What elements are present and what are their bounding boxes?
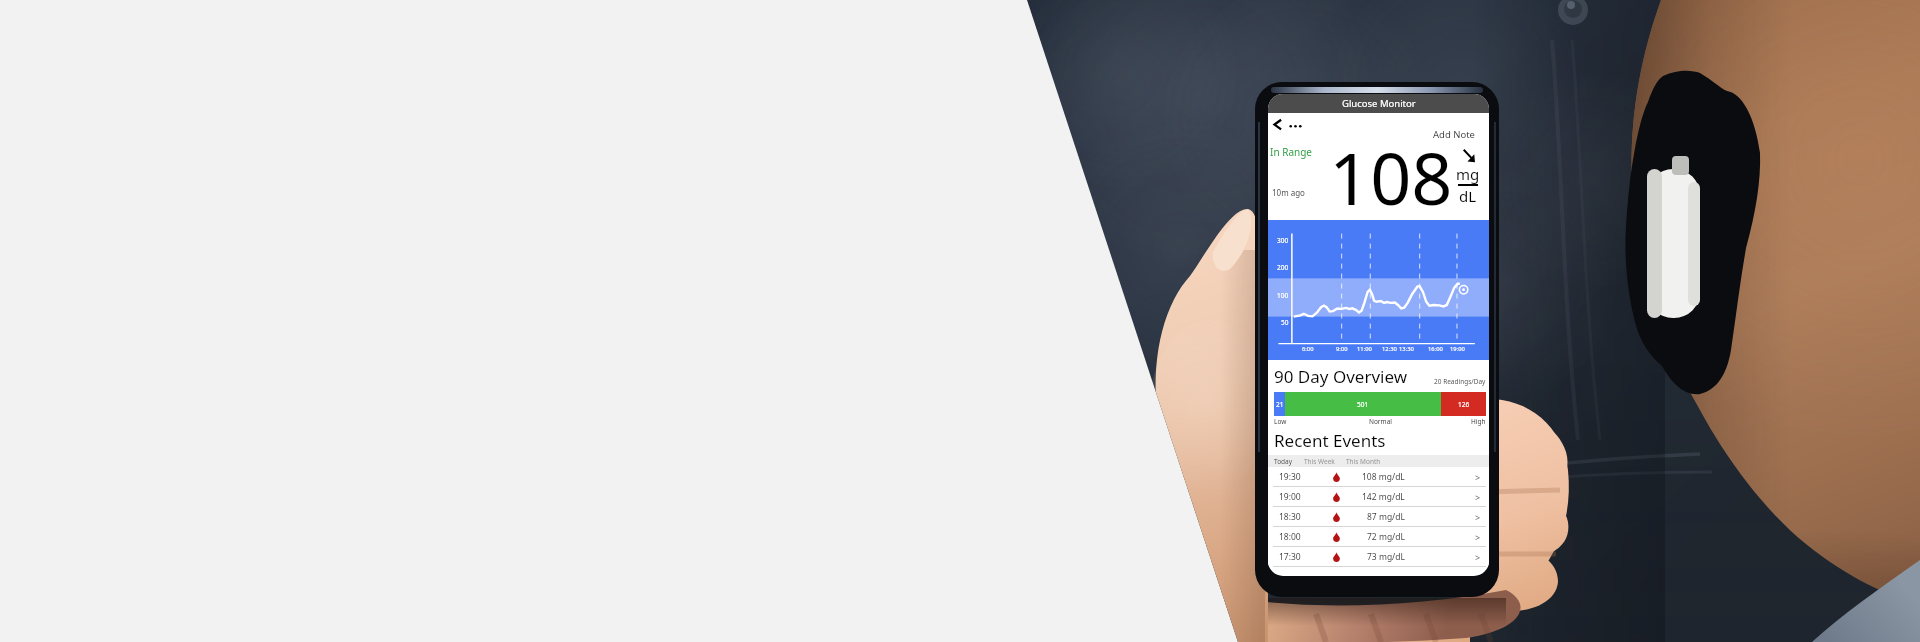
button[interactable]: More options [1288,119,1303,132]
staticText: 108 mg/dL [1362,471,1405,483]
staticText: 20 Readings/Day [1434,377,1486,386]
staticText: 142 mg/dL [1362,491,1405,503]
staticText: 21 [1276,400,1284,409]
staticText: In Range [1270,145,1312,159]
staticText: Low [1274,417,1287,426]
staticText: 72 mg/dL [1367,531,1405,543]
staticText: 11:00 [1357,345,1372,353]
staticText: 19:30 [1279,471,1301,483]
staticText: 10m ago [1272,187,1305,198]
staticText: > [1475,491,1481,503]
staticText: 18:30 [1279,511,1301,523]
button[interactable]: 19:30 [1268,467,1489,487]
staticText: 501 [1357,400,1369,409]
staticText: Glucose Monitor [1342,97,1416,110]
staticText: 300 [1277,236,1289,245]
staticText: This Month [1346,457,1381,466]
staticText: mg [1456,164,1480,184]
button[interactable]: 18:00 [1268,527,1489,547]
staticText: 13:30 [1399,345,1414,353]
staticText: 17:30 [1279,551,1301,563]
staticText: 108 [1329,128,1453,209]
staticText: 100 [1277,291,1289,300]
staticText: Normal [1369,417,1392,426]
staticText: Today [1274,457,1293,466]
button[interactable]: Today [1274,457,1293,466]
staticText: > [1475,471,1481,483]
staticText: 18:00 [1279,531,1301,543]
staticText: 87 mg/dL [1367,511,1405,523]
staticText: Add Note [1433,128,1475,141]
button[interactable]: Back [1270,117,1285,131]
staticText: 9:00 [1336,345,1348,353]
staticText: 19:00 [1279,491,1301,503]
staticText: Recent Events [1274,429,1386,452]
staticText: 90 Day Overview [1274,365,1408,388]
staticText: > [1475,511,1481,523]
button[interactable]: 19:00 [1268,487,1489,507]
staticText: 73 mg/dL [1367,551,1405,563]
staticText: 16:00 [1428,345,1443,353]
button[interactable]: 18:30 [1268,507,1489,527]
staticText: High [1471,417,1486,426]
staticText: 126 [1458,400,1470,409]
button[interactable]: This Month [1346,457,1381,466]
staticText: 6:00 [1302,345,1314,353]
staticText: > [1475,551,1481,563]
staticText: 12:30 [1382,345,1397,353]
staticText: dL [1459,186,1477,206]
button[interactable]: 17:30 [1268,547,1489,567]
button[interactable]: This Week [1304,457,1335,466]
staticText: 50 [1281,318,1289,327]
staticText: > [1475,531,1481,543]
staticText: 19:00 [1450,345,1465,353]
staticText: 200 [1277,263,1289,272]
staticText: This Week [1304,457,1335,466]
button[interactable]: Add Note [1433,128,1475,141]
